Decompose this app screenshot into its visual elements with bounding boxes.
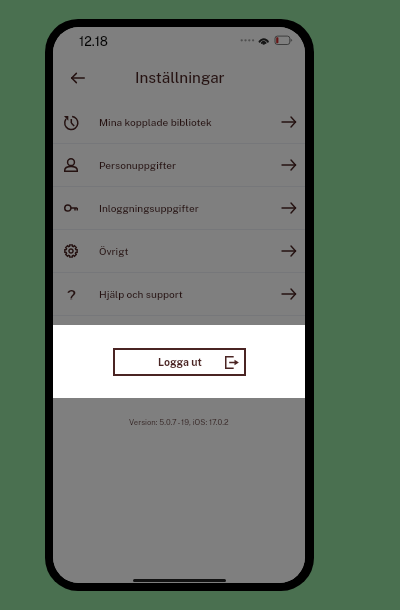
staticText: Inställningar (135, 69, 225, 87)
button[interactable]: Logga ut (113, 348, 246, 376)
staticText: Övrigt (99, 245, 129, 257)
staticText: 12.18 (79, 34, 109, 49)
staticText: ? (67, 286, 76, 300)
button[interactable]: ? (53, 273, 305, 315)
button[interactable]: Back (59, 59, 95, 95)
staticText: Mina kopplade bibliotek (99, 116, 212, 128)
button[interactable]: Övrigt (53, 230, 305, 272)
staticText: Logga ut (158, 356, 202, 368)
staticText: Inloggningsuppgifter (99, 202, 199, 214)
button[interactable]: Inloggningsuppgifter (53, 187, 305, 229)
button[interactable]: Personuppgifter (53, 144, 305, 186)
staticText: Version: 5.0.7 - 19, iOS: 17.0.2 (129, 418, 229, 427)
staticText: Personuppgifter (99, 159, 177, 171)
button[interactable]: Mina kopplade bibliotek (53, 101, 305, 143)
staticText: Hjälp och support (99, 288, 183, 300)
